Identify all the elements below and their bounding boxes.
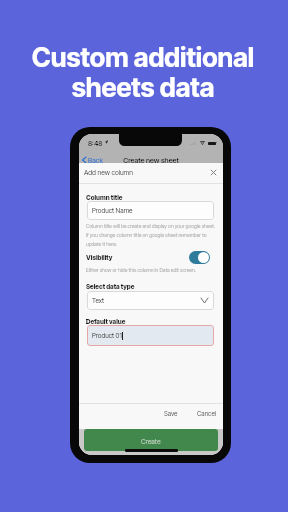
staticText: Text bbox=[92, 297, 105, 305]
button[interactable]: Back bbox=[82, 155, 103, 165]
staticText: Create bbox=[141, 437, 161, 445]
staticText: 8:48 bbox=[88, 139, 103, 147]
button[interactable]: Product 01 bbox=[87, 325, 214, 346]
staticText: Add new column bbox=[84, 168, 133, 176]
button[interactable]: Save bbox=[164, 410, 178, 418]
staticText: Product Name bbox=[92, 207, 133, 215]
staticText: Select data type bbox=[86, 283, 135, 291]
staticText: Product 01 bbox=[92, 332, 122, 340]
button[interactable]: Text bbox=[87, 291, 214, 310]
staticText: Column title will be create and display … bbox=[86, 223, 215, 247]
staticText: Visibility bbox=[86, 254, 113, 262]
button[interactable]: Create bbox=[84, 429, 218, 451]
button[interactable]: Visibility toggle bbox=[189, 251, 210, 264]
staticText: Create new sheet bbox=[79, 156, 223, 165]
staticText: Either show or hide this column in Data … bbox=[86, 267, 196, 273]
staticText: Custom additional sheets data bbox=[0, 41, 287, 104]
staticText: Column title bbox=[86, 194, 123, 202]
staticText: Back bbox=[88, 156, 103, 164]
button[interactable]: Close bbox=[209, 168, 218, 177]
button[interactable]: Product Name bbox=[87, 201, 214, 220]
button[interactable]: Cancel bbox=[197, 410, 217, 418]
staticText: Default value bbox=[86, 318, 126, 326]
